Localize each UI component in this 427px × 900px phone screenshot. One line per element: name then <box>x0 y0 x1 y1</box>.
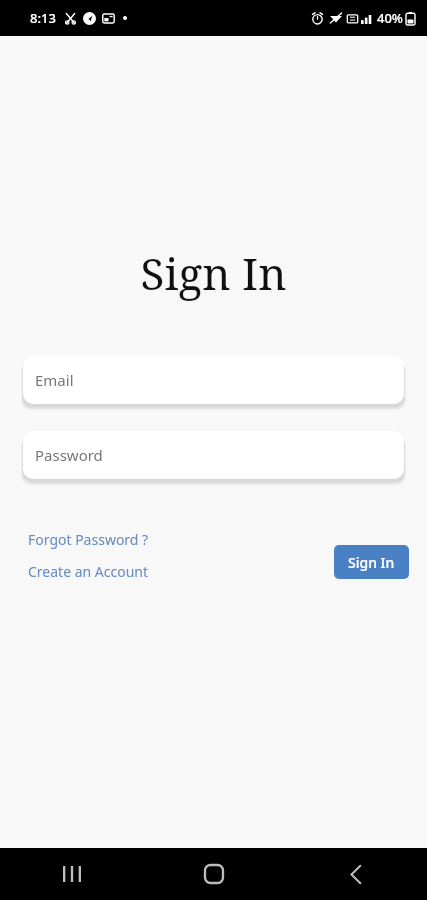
button[interactable]: Back <box>285 848 427 900</box>
staticText: Sign In <box>0 243 427 303</box>
staticText: 8:13 <box>30 9 56 27</box>
staticText: Email <box>35 370 74 390</box>
button[interactable]: Email <box>23 356 404 404</box>
button[interactable]: Recent apps <box>0 848 143 900</box>
button[interactable]: Sign In <box>334 545 409 579</box>
button[interactable]: Password <box>23 431 404 479</box>
button[interactable]: Forgot Password ? <box>28 527 149 552</box>
staticText: 40% <box>377 9 403 27</box>
button[interactable]: Create an Account <box>28 559 149 584</box>
staticText: Sign In <box>348 553 395 572</box>
button[interactable]: Home <box>143 848 285 900</box>
staticText: Password <box>35 445 103 465</box>
